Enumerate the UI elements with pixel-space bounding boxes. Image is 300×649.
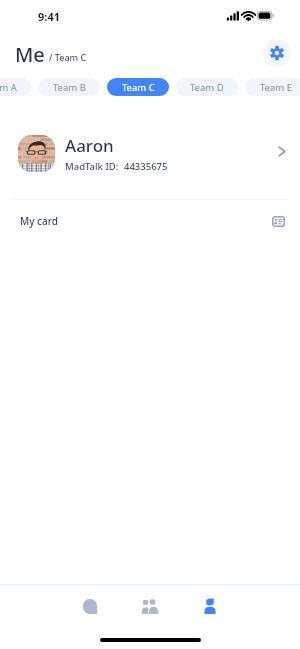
staticText: My card [20, 214, 58, 228]
staticText: / Team C [49, 51, 87, 63]
staticText: Team D [190, 81, 224, 94]
staticText: Team A [0, 81, 17, 94]
staticText: Team C [122, 81, 155, 94]
button[interactable]: Contacts [120, 590, 180, 622]
button[interactable]: Team E [245, 78, 300, 96]
button[interactable]: Me [180, 590, 240, 622]
button[interactable]: My card [0, 202, 300, 240]
button[interactable]: Settings [263, 39, 291, 67]
button[interactable]: Aaron [0, 118, 300, 188]
staticText: Me [15, 41, 45, 68]
staticText: Aaron [65, 134, 114, 157]
button[interactable]: Team A [0, 78, 31, 96]
staticText: Team B [53, 81, 86, 94]
staticText: MadTalk ID: [65, 160, 119, 173]
button[interactable]: Chats [60, 590, 120, 622]
staticText: 44335675 [124, 160, 168, 173]
button[interactable]: Team D [176, 78, 238, 96]
staticText: Team E [260, 81, 292, 94]
button[interactable]: Team C [107, 78, 169, 96]
staticText: 9:41 [38, 9, 60, 24]
button[interactable]: Team B [38, 78, 100, 96]
